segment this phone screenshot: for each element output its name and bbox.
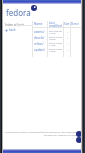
staticText: back [9,28,16,32]
staticText: atomic/ [34,30,45,34]
staticText: 2019-10-30 12:36 [49,47,63,53]
other: Fedora logo [31,5,37,11]
staticText: releas/ [34,42,44,46]
staticText: Index of /pub [5,23,25,27]
staticText: Descr [71,22,79,26]
button[interactable]: Descr [71,22,79,27]
staticText: The Fedora Project is maintained and dri… [5,130,85,133]
staticText: 2019-10-23 15:20 [49,35,63,41]
staticText: 2017-05-25 17:49 [49,29,63,35]
button[interactable]: Red Hat [76,137,82,143]
staticText: 2019-10-29 11:06 [49,41,63,47]
staticText: fedora [6,7,31,18]
button[interactable]: fedora [6,7,31,18]
staticText: - [67,42,68,46]
button[interactable]: atomic/ [33,29,82,35]
staticText: Last modified [49,21,62,28]
staticText: update/ [34,48,46,52]
staticText: - [67,48,68,52]
staticText: develo/ [34,36,45,40]
button[interactable]: Name [34,22,43,27]
staticText: - [67,30,68,34]
staticText: - [67,36,68,40]
button[interactable]: develo/ [33,35,82,41]
button[interactable]: Size [64,22,70,27]
button[interactable]: releas/ [33,41,82,47]
button[interactable]: update/ [33,47,82,53]
staticText: Name [34,22,43,26]
staticText: Size [64,22,70,26]
other: Parent directory [5,29,8,32]
staticText: by Red Hat. Fedora is a trademark [44,133,84,136]
button[interactable]: Fedora [76,131,82,137]
button[interactable]: Last modified [49,21,62,28]
button[interactable]: Parent directory [5,28,16,32]
